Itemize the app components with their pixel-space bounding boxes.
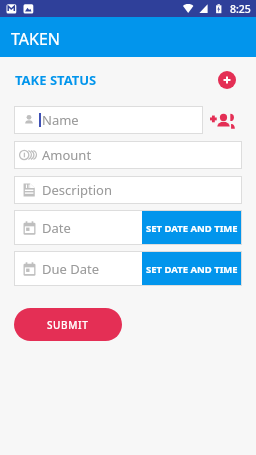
staticText: TAKEN [11, 28, 60, 50]
staticText: SET DATE AND TIME [146, 263, 238, 276]
button[interactable]: SET DATE AND TIME [142, 252, 242, 286]
staticText: SUBMIT [47, 318, 89, 332]
staticText: Date [42, 219, 71, 237]
button[interactable]: Name [14, 106, 203, 134]
button[interactable]: Amount [14, 141, 242, 169]
button[interactable]: SUBMIT [14, 308, 122, 341]
staticText: Description [42, 181, 112, 199]
staticText: Amount [42, 146, 92, 164]
button[interactable]: Add contact [210, 111, 237, 129]
staticText: Due Date [42, 260, 100, 278]
staticText: SET DATE AND TIME [146, 222, 238, 235]
button[interactable]: Add [218, 71, 236, 89]
staticText: 8:25 [230, 2, 251, 16]
button[interactable]: Description [14, 176, 242, 204]
button[interactable]: SET DATE AND TIME [142, 211, 242, 245]
staticText: Name [42, 111, 79, 129]
staticText: TAKE STATUS [15, 71, 97, 89]
